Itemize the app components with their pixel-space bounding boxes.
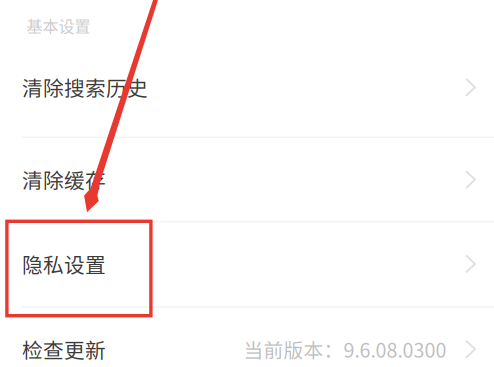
staticText: 清除搜索历史 (22, 72, 148, 102)
button[interactable]: 隐私设置 (0, 222, 494, 306)
button[interactable]: 清除搜索历史 (0, 45, 494, 130)
staticText: 当前版本：9.6.08.0300 (243, 335, 446, 363)
staticText: 清除缓存 (22, 165, 106, 194)
staticText: 基本设置 (26, 14, 90, 37)
button[interactable]: 清除缓存 (0, 137, 494, 222)
button[interactable]: 检查更新 (0, 307, 494, 367)
staticText: 检查更新 (22, 334, 106, 364)
staticText: 隐私设置 (22, 249, 106, 279)
